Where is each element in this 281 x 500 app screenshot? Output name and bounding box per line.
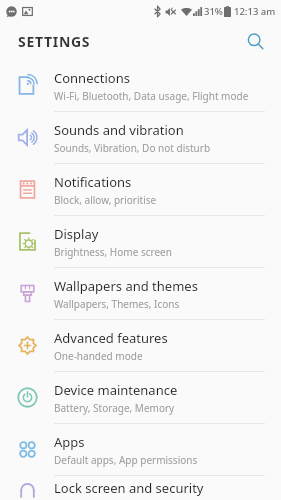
button[interactable]: Sounds and vibration [0, 112, 281, 163]
staticText: Wallpapers, Themes, Icons [54, 297, 180, 311]
staticText: Lock screen and security [54, 479, 204, 497]
staticText: Sounds and vibration [54, 121, 184, 139]
button[interactable]: Device maintenance [0, 372, 281, 423]
staticText: Connections [54, 69, 130, 87]
button[interactable]: Lock screen and security [0, 476, 281, 500]
staticText: Notifications [54, 173, 132, 191]
staticText: Default apps, App permissions [54, 453, 198, 467]
button[interactable]: Advanced features [0, 320, 281, 371]
staticText: SETTINGS [18, 32, 91, 51]
staticText: 31% [204, 5, 223, 18]
staticText: Brightness, Home screen [54, 245, 172, 259]
button[interactable]: Display [0, 216, 281, 267]
staticText: One-handed mode [54, 349, 143, 363]
staticText: Sounds, Vibration, Do not disturb [54, 141, 211, 155]
staticText: Wallpapers and themes [54, 277, 198, 295]
button[interactable]: Notifications [0, 164, 281, 215]
staticText: Advanced features [54, 329, 168, 347]
button[interactable]: Wallpapers and themes [0, 268, 281, 319]
staticText: Device maintenance [54, 381, 178, 399]
staticText: Battery, Storage, Memory [54, 401, 175, 415]
staticText: Block, allow, prioritise [54, 193, 157, 207]
button[interactable]: Connections [0, 60, 281, 111]
staticText: Display [54, 225, 99, 243]
staticText: 12:13 am [234, 5, 276, 18]
button[interactable]: Apps [0, 424, 281, 475]
staticText: Apps [54, 433, 85, 451]
staticText: Wi-Fi, Bluetooth, Data usage, Flight mod… [54, 89, 249, 103]
button[interactable]: Search [240, 26, 270, 56]
